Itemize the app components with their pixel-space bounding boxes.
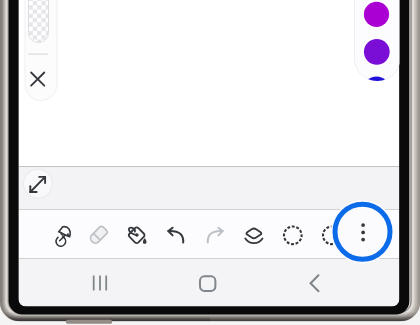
button[interactable]: Back xyxy=(292,262,332,304)
button[interactable]: Brush xyxy=(50,215,80,255)
button[interactable]: Layers xyxy=(239,215,269,255)
button[interactable]: Expand xyxy=(23,170,52,199)
button[interactable]: Recents xyxy=(80,262,120,304)
button[interactable]: Undo xyxy=(161,215,191,255)
button[interactable]: Colour palette xyxy=(355,0,400,75)
button[interactable]: Fill xyxy=(122,215,152,255)
button[interactable]: Close xyxy=(25,0,57,101)
button[interactable]: Eraser xyxy=(84,215,114,255)
button[interactable]: Select xyxy=(278,215,308,255)
button[interactable]: Redo xyxy=(200,215,230,255)
button[interactable]: Home xyxy=(188,262,228,304)
button[interactable]: More options xyxy=(333,202,390,259)
